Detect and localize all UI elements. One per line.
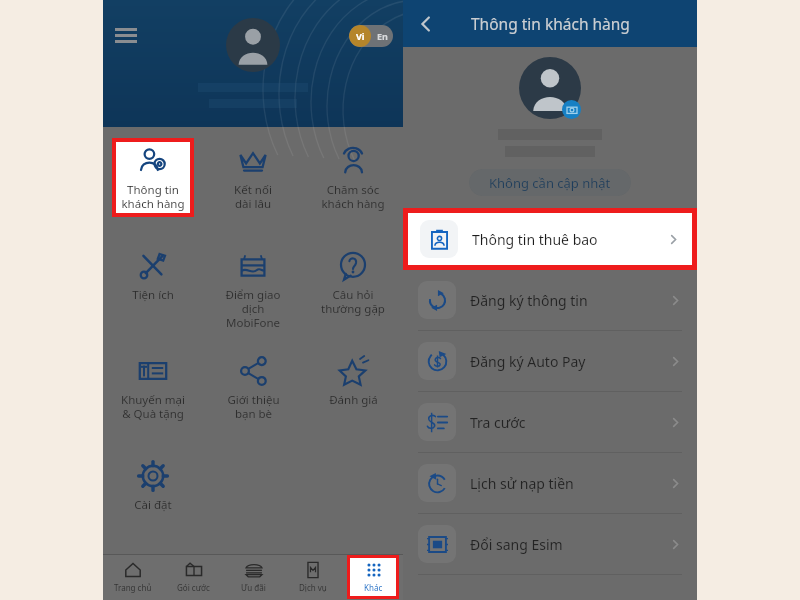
button[interactable]: Chăm sóc khách hàng bbox=[303, 142, 403, 211]
staticText: Tiện ích bbox=[132, 287, 174, 303]
button[interactable]: Dịch vụ bbox=[299, 554, 327, 600]
button[interactable]: Thông tin thuê bao bbox=[420, 213, 680, 265]
button[interactable]: Thông tin khách hàng bbox=[116, 142, 190, 213]
button[interactable]: Vi bbox=[349, 25, 393, 47]
button[interactable]: Back bbox=[409, 7, 443, 41]
staticText: Vi bbox=[356, 30, 365, 42]
button[interactable]: Gói cước bbox=[177, 554, 210, 600]
staticText: Dịch vụ bbox=[299, 582, 327, 593]
button[interactable]: Kết nối dài lâu bbox=[203, 142, 303, 211]
button[interactable]: Đánh giá bbox=[303, 352, 403, 408]
staticText: Đăng ký Auto Pay bbox=[470, 352, 586, 371]
staticText: Thông tin thuê bao bbox=[472, 230, 598, 249]
button[interactable]: Trang chủ bbox=[114, 554, 152, 600]
staticText: Ưu đãi bbox=[241, 582, 266, 593]
button[interactable]: Tra cước bbox=[418, 392, 682, 452]
staticText: Giới thiệu bạn bè bbox=[227, 392, 280, 421]
button[interactable]: Đăng ký Auto Pay bbox=[418, 331, 682, 391]
button[interactable]: Change photo bbox=[562, 100, 581, 119]
button[interactable]: Tiện ích bbox=[103, 247, 203, 303]
staticText: Câu hỏi thường gặp bbox=[321, 287, 385, 316]
button[interactable]: Đăng ký thông tin bbox=[418, 270, 682, 330]
staticText: Cài đặt bbox=[134, 497, 172, 513]
staticText: Đổi sang Esim bbox=[470, 535, 563, 554]
staticText: Khác bbox=[364, 582, 383, 593]
staticText: Trang chủ bbox=[114, 582, 152, 593]
staticText: En bbox=[377, 30, 388, 42]
button[interactable]: Đổi sang Esim bbox=[418, 514, 682, 574]
button[interactable]: Lịch sử nạp tiền bbox=[418, 453, 682, 513]
button[interactable]: Cài đặt bbox=[103, 457, 203, 513]
staticText: Đánh giá bbox=[329, 392, 378, 408]
staticText: Thông tin khách hàng bbox=[471, 13, 630, 34]
button[interactable]: Ưu đãi bbox=[241, 554, 266, 600]
staticText: Điểm giao dịch MobiFone bbox=[225, 287, 281, 330]
staticText: Thông tin khách hàng bbox=[121, 182, 185, 211]
staticText: Chăm sóc khách hàng bbox=[321, 182, 385, 211]
staticText: Khuyến mại & Quà tặng bbox=[121, 392, 185, 421]
button[interactable]: Không cần cập nhật bbox=[489, 169, 611, 196]
button[interactable]: Menu bbox=[115, 28, 137, 44]
staticText: Lịch sử nạp tiền bbox=[470, 474, 574, 493]
staticText: Không cần cập nhật bbox=[489, 174, 611, 192]
button[interactable]: Khuyến mại & Quà tặng bbox=[103, 352, 203, 421]
staticText: Đăng ký thông tin bbox=[470, 291, 588, 310]
staticText: Gói cước bbox=[177, 582, 210, 593]
button[interactable]: Điểm giao dịch MobiFone bbox=[203, 247, 303, 330]
button[interactable]: Giới thiệu bạn bè bbox=[203, 352, 303, 421]
button[interactable]: Câu hỏi thường gặp bbox=[303, 247, 403, 316]
staticText: Tra cước bbox=[470, 413, 526, 432]
staticText: Kết nối dài lâu bbox=[234, 182, 272, 211]
button[interactable]: Khác bbox=[350, 558, 396, 596]
